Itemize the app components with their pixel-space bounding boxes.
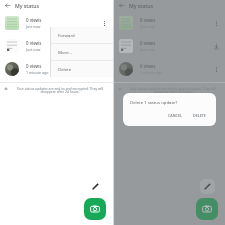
staticText: CANCEL [168, 113, 182, 118]
button[interactable]: More options [211, 18, 221, 28]
staticText: 0 views [26, 17, 42, 23]
button[interactable]: More... [50, 44, 113, 60]
button[interactable]: 0 views [114, 11, 225, 34]
staticText: 0 views [140, 40, 156, 46]
staticText: 1 minute ago [140, 70, 163, 75]
staticText: 0 views [140, 63, 156, 69]
button[interactable]: More options [99, 18, 109, 28]
staticText: Just now [26, 47, 41, 52]
staticText: 0 views [26, 63, 42, 69]
button[interactable]: Camera [84, 198, 106, 220]
staticText: My status [15, 2, 40, 9]
button[interactable]: Download [211, 41, 221, 51]
staticText: Your status updates are end-to-end encry… [11, 86, 109, 94]
staticText: Your status updates are end-to-end encry… [125, 86, 221, 94]
staticText: Delete 1 status update? [130, 99, 178, 105]
button[interactable]: Write status [88, 179, 103, 194]
button[interactable]: Download [99, 41, 109, 51]
button[interactable]: CANCEL [165, 111, 185, 120]
button[interactable]: 0 views [114, 57, 225, 80]
staticText: Just now [140, 24, 155, 29]
staticText: More... [58, 49, 73, 55]
staticText: 1 minute ago [26, 70, 49, 75]
staticText: My status [129, 2, 154, 9]
button[interactable]: Write status [200, 179, 215, 194]
button[interactable]: 0 views [114, 34, 225, 57]
button[interactable]: More options [211, 64, 221, 74]
button[interactable]: Camera [196, 198, 218, 220]
staticText: 0 views [26, 40, 42, 46]
button[interactable]: Back [117, 1, 126, 10]
button[interactable]: Back [3, 1, 12, 10]
staticText: Delete [58, 66, 72, 72]
staticText: 0 views [140, 17, 156, 23]
button[interactable]: Delete [50, 61, 113, 77]
button[interactable]: 0 views [0, 34, 113, 57]
staticText: Just now [140, 47, 155, 52]
staticText: DELETE [193, 113, 206, 118]
button[interactable]: DELETE [190, 111, 209, 120]
button[interactable]: 0 views [0, 57, 113, 80]
staticText: Forward [58, 32, 75, 38]
button[interactable]: 0 views [0, 11, 113, 34]
staticText: Just now [26, 24, 41, 29]
button[interactable]: Forward [50, 27, 113, 43]
